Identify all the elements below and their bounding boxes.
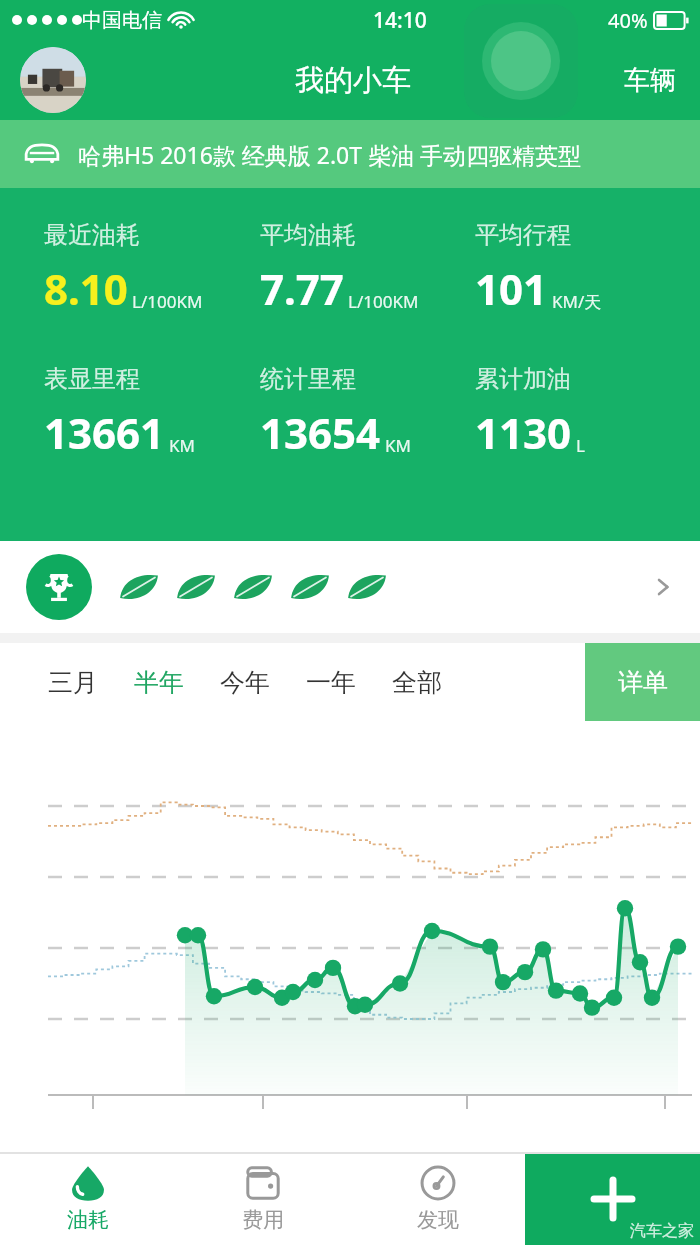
staticText: 最近油耗 [44,220,140,250]
button[interactable]: 累计加油 [475,364,690,461]
staticText: 今年 [220,667,270,698]
staticText: 半年 [134,667,184,698]
staticText: 我的小车 [295,62,411,99]
staticText: 全部 [392,667,442,698]
staticText: 哈弗H5 2016款 经典版 2.0T 柴油 手动四驱精英型 [78,139,581,170]
staticText: 14:10 [373,6,427,35]
button[interactable]: 半年 [124,659,194,706]
staticText: 8.10 [44,260,128,317]
staticText: KM [385,434,411,457]
staticText: L [576,434,585,457]
staticText: 中国电信 [82,8,162,33]
staticText: 一年 [306,667,356,698]
staticText: KM/天 [552,290,602,313]
staticText: 平均行程 [475,220,571,250]
staticText: 三月 [48,667,98,698]
button[interactable]: Assistive touch [464,4,578,118]
button[interactable]: 今年 [210,659,280,706]
staticText: 40% [608,7,648,34]
button[interactable]: 最近油耗 [44,220,260,317]
staticText: 油耗 [67,1207,109,1233]
button[interactable]: 油耗 [0,1152,175,1245]
staticText: 统计里程 [260,364,356,394]
staticText: 平均油耗 [260,220,356,250]
staticText: 发现 [417,1207,459,1233]
staticText: 费用 [242,1207,284,1233]
button[interactable]: 车辆 [620,60,680,101]
staticText: 车辆 [624,64,676,97]
button[interactable]: 统计里程 [260,364,475,461]
staticText: 1130 [475,404,572,461]
button[interactable]: 详单 [585,643,700,721]
staticText: 详单 [618,667,668,698]
staticText: L/100KM [348,290,419,313]
staticText: 表显里程 [44,364,140,394]
staticText: KM [169,434,195,457]
button[interactable]: 费用 [175,1152,350,1245]
button[interactable]: 三月 [38,659,108,706]
button[interactable]: Profile [20,47,86,113]
staticText: L/100KM [132,290,203,313]
button[interactable]: Add record [525,1152,700,1245]
staticText: 101 [475,260,548,317]
button[interactable]: 表显里程 [44,364,260,461]
staticText: 汽车之家 [630,1221,694,1241]
button[interactable] [0,541,700,633]
button[interactable]: 哈弗H5 2016款 经典版 2.0T 柴油 手动四驱精英型 [24,120,700,188]
staticText: 累计加油 [475,364,571,394]
staticText: 13654 [260,404,381,461]
button[interactable]: 平均行程 [475,220,690,317]
button[interactable]: 一年 [296,659,366,706]
staticText: 13661 [44,404,165,461]
staticText: 7.77 [260,260,344,317]
button[interactable]: 全部 [382,659,452,706]
button[interactable]: 发现 [350,1152,525,1245]
button[interactable]: 平均油耗 [260,220,475,317]
